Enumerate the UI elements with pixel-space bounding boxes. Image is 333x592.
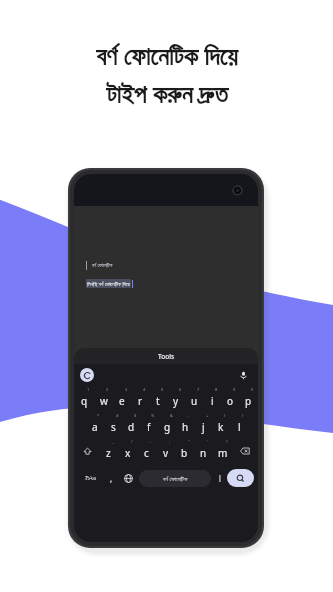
- staticText: #: [116, 413, 119, 418]
- button[interactable]: &: [158, 412, 176, 438]
- staticText: 8: [215, 387, 218, 392]
- button[interactable]: $: [122, 412, 140, 438]
- button[interactable]: (: [212, 412, 230, 438]
- staticText: ": [188, 439, 190, 444]
- button[interactable]: ,: [104, 464, 119, 492]
- button[interactable]: Search: [227, 469, 254, 487]
- staticText: r: [138, 394, 143, 408]
- staticText: j: [202, 420, 205, 434]
- staticText: 3: [125, 387, 128, 392]
- button[interactable]: %: [140, 412, 158, 438]
- staticText: 6: [179, 387, 182, 392]
- button[interactable]: 3: [113, 386, 131, 412]
- staticText: টাইপ করুন দ্রুত: [106, 76, 228, 110]
- staticText: ': [207, 439, 208, 444]
- button[interactable]: ): [230, 412, 248, 438]
- staticText: ): [242, 413, 244, 418]
- staticText: b: [181, 446, 188, 460]
- staticText: z: [106, 446, 111, 460]
- button[interactable]: 6: [167, 386, 185, 412]
- staticText: 7: [197, 387, 200, 392]
- staticText: f: [147, 420, 151, 434]
- staticText: t: [156, 394, 160, 408]
- staticText: q: [81, 394, 88, 408]
- button[interactable]: -: [176, 412, 194, 438]
- staticText: ,: [110, 473, 113, 484]
- button[interactable]: _: [99, 438, 118, 464]
- staticText: d: [128, 420, 135, 434]
- staticText: s: [111, 420, 116, 434]
- staticText: v: [163, 446, 169, 460]
- staticText: m: [218, 446, 228, 460]
- button[interactable]: +: [194, 412, 212, 438]
- button[interactable]: ?১২৩: [77, 464, 104, 492]
- staticText: l: [238, 420, 241, 434]
- staticText: n: [200, 446, 207, 460]
- button[interactable]: 8: [203, 386, 221, 412]
- button[interactable]: Tools: [74, 348, 258, 364]
- staticText: বর্ণ ফোনেটিক: [92, 262, 113, 269]
- button[interactable]: 9: [221, 386, 239, 412]
- staticText: k: [218, 420, 224, 434]
- staticText: %: [151, 413, 155, 418]
- button[interactable]: :: [137, 438, 156, 464]
- button[interactable]: Shift: [75, 438, 99, 464]
- staticText: o: [227, 394, 234, 408]
- staticText: ;: [169, 439, 171, 444]
- button[interactable]: #: [104, 412, 122, 438]
- staticText: h: [182, 420, 189, 434]
- button[interactable]: Change language: [119, 464, 137, 492]
- button[interactable]: *: [85, 412, 104, 438]
- staticText: $: [134, 413, 137, 418]
- button[interactable]: 5: [149, 386, 167, 412]
- staticText: ?১২৩: [85, 474, 97, 482]
- staticText: e: [119, 394, 125, 408]
- staticText: |: [218, 473, 222, 483]
- staticText: :: [150, 439, 152, 444]
- staticText: বর্ণ ফোনেটিক দিয়ে: [96, 38, 238, 72]
- staticText: c: [144, 446, 149, 460]
- button[interactable]: 7: [185, 386, 203, 412]
- staticText: Tools: [158, 352, 175, 361]
- button[interactable]: ;: [156, 438, 175, 464]
- staticText: _: [112, 439, 114, 444]
- button[interactable]: ?: [213, 438, 232, 464]
- staticText: *: [97, 413, 100, 418]
- button[interactable]: ": [175, 438, 194, 464]
- button[interactable]: ': [194, 438, 213, 464]
- staticText: w: [100, 394, 108, 408]
- staticText: p: [245, 394, 252, 408]
- staticText: /: [131, 439, 133, 444]
- staticText: 9: [233, 387, 236, 392]
- button[interactable]: 4: [131, 386, 149, 412]
- staticText: +: [206, 413, 209, 418]
- button[interactable]: বর্ণ ফোনেটিক: [139, 470, 211, 487]
- staticText: ?: [226, 439, 228, 444]
- button[interactable]: Language: [80, 368, 94, 382]
- staticText: u: [191, 394, 198, 408]
- staticText: (: [224, 413, 226, 418]
- staticText: বর্ণ ফোনেটিক: [163, 475, 188, 483]
- button[interactable]: Voice input: [236, 368, 250, 382]
- staticText: 2: [106, 387, 109, 392]
- staticText: g: [164, 420, 171, 434]
- staticText: -: [188, 413, 190, 418]
- staticText: লিখছি বর্ণ ফোনেটিক দিয়ে: [87, 280, 130, 287]
- staticText: 1: [87, 387, 90, 392]
- button[interactable]: |: [213, 464, 226, 492]
- staticText: i: [211, 394, 214, 408]
- staticText: x: [125, 446, 131, 460]
- staticText: 4: [143, 387, 146, 392]
- staticText: 0: [251, 387, 254, 392]
- button[interactable]: 2: [94, 386, 113, 412]
- staticText: 5: [161, 387, 164, 392]
- staticText: &: [170, 413, 173, 418]
- button[interactable]: Backspace: [232, 438, 257, 464]
- button[interactable]: 1: [75, 386, 94, 412]
- staticText: a: [92, 420, 98, 434]
- button[interactable]: /: [118, 438, 137, 464]
- staticText: y: [173, 394, 179, 408]
- button[interactable]: 0: [239, 386, 257, 412]
